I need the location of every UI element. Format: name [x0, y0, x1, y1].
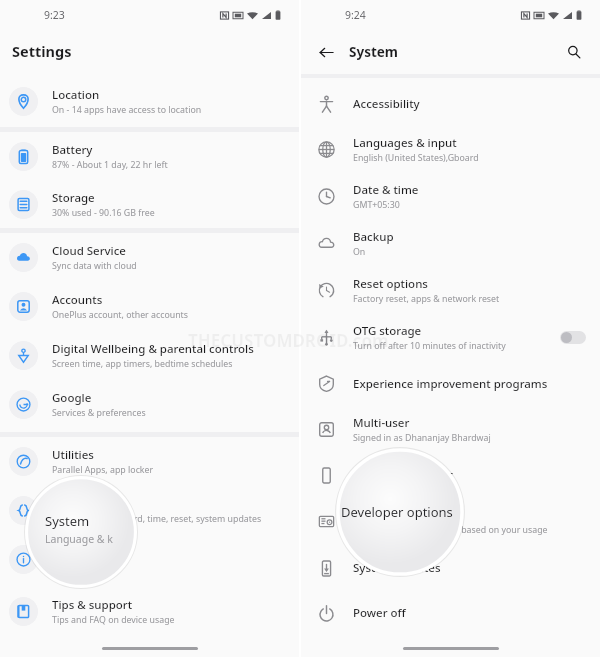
staticText: Power off [353, 605, 406, 621]
button[interactable]: Storage [0, 180, 299, 228]
staticText: System updates [353, 560, 441, 576]
staticText: Experience improvement programs [353, 376, 548, 392]
staticText: Storage [52, 190, 95, 206]
staticText: Developer options [341, 503, 453, 521]
staticText: Languages & input [353, 135, 457, 151]
button[interactable]: Accounts [0, 282, 299, 331]
button[interactable]: Battery [0, 132, 299, 180]
staticText: OnePlus account, other accounts [52, 309, 188, 321]
button[interactable]: Developer options [301, 452, 600, 498]
staticText: Utilities [52, 447, 94, 463]
button[interactable]: Accessibility [301, 82, 600, 126]
button[interactable]: Cloud Service [0, 233, 299, 282]
button[interactable]: Location [0, 78, 299, 125]
staticText: THECUSTOMDROID.com [188, 329, 389, 352]
staticText: Accessibility [353, 96, 420, 112]
button[interactable]: OTG storage toggle [560, 331, 586, 344]
staticText: About phone [52, 545, 124, 561]
button[interactable]: Languages & input [301, 126, 600, 173]
button[interactable]: System [0, 486, 299, 535]
staticText: Tips & support [52, 597, 133, 613]
staticText: Language & keyboard, time, reset, system… [52, 513, 262, 525]
staticText: RAM Boost [353, 507, 413, 523]
staticText: Sync data with cloud [52, 260, 137, 272]
staticText: Google [52, 390, 92, 406]
staticText: Reset options [353, 276, 428, 292]
staticText: Language & k [45, 532, 113, 546]
button[interactable]: Experience improvement programs [301, 361, 600, 406]
button[interactable]: Search [561, 39, 587, 65]
staticText: Turn off after 10 minutes of inactivity [353, 340, 506, 352]
staticText: 30% used - 90.16 GB free [52, 207, 155, 219]
button[interactable]: Digital Wellbeing & parental controls [0, 331, 299, 380]
button[interactable]: About phone [0, 535, 299, 584]
staticText: Services & preferences [52, 407, 146, 419]
staticText: Digital Wellbeing & parental controls [52, 341, 254, 357]
staticText: Accounts [52, 292, 103, 308]
button[interactable]: Back [313, 39, 339, 65]
button[interactable]: OTG storage [301, 314, 600, 361]
button[interactable]: RAM Boost [301, 498, 600, 545]
staticText: Factory reset, apps & network reset [353, 293, 500, 305]
button[interactable]: Utilities [0, 437, 299, 486]
staticText: System [45, 512, 90, 530]
button[interactable]: Multi-user [301, 406, 600, 452]
staticText: Settings [12, 41, 72, 61]
staticText: Battery [52, 142, 93, 158]
staticText: Parallel Apps, app locker [52, 464, 154, 476]
button[interactable]: Tips & support [0, 588, 299, 634]
staticText: Location [52, 87, 100, 103]
staticText: GMT+05:30 [353, 199, 400, 211]
staticText: English (United States),Gboard [353, 152, 479, 164]
staticText: Signed in as Dhananjay Bhardwaj [353, 432, 491, 444]
staticText: OTG storage [353, 323, 422, 339]
staticText: Tips and FAQ on device usage [52, 614, 175, 626]
staticText: 87% - About 1 day, 22 hr left [52, 159, 168, 171]
staticText: 9:24 [345, 8, 366, 22]
button[interactable]: System updates [301, 545, 600, 591]
button[interactable]: Power off [301, 591, 600, 635]
staticText: Screen time, app timers, bedtime schedul… [52, 358, 233, 370]
button[interactable]: Reset options [301, 267, 600, 314]
staticText: Multi-user [353, 415, 410, 431]
button[interactable]: Backup [301, 220, 600, 267]
staticText: Developer options [353, 467, 454, 483]
staticText: Date & time [353, 182, 419, 198]
staticText: Optimizes RAM utilization based on your … [353, 524, 548, 536]
button[interactable]: Date & time [301, 173, 600, 220]
staticText: On [353, 246, 366, 258]
staticText: 9:23 [44, 8, 65, 22]
staticText: Cloud Service [52, 243, 126, 259]
staticText: System [349, 43, 399, 61]
button[interactable]: Google [0, 380, 299, 429]
staticText: On - 14 apps have access to location [52, 104, 202, 116]
staticText: Backup [353, 229, 394, 245]
